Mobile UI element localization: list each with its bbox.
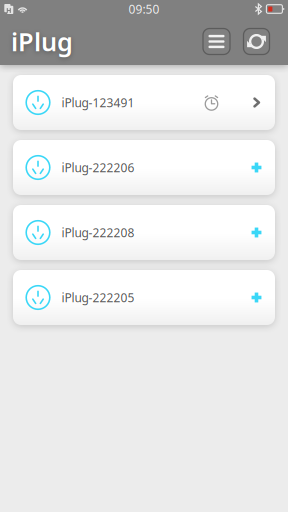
button[interactable]: iPlug-222206 bbox=[13, 140, 275, 195]
button[interactable]: iPlug-222205 bbox=[13, 270, 275, 325]
staticText: iPlug-222206 bbox=[61, 159, 134, 175]
button[interactable]: Refresh bbox=[243, 28, 269, 54]
button[interactable]: iPlug-123491 bbox=[13, 75, 275, 130]
staticText: iPlug bbox=[11, 25, 73, 58]
staticText: iPlug-222208 bbox=[61, 224, 134, 240]
button[interactable]: Menu bbox=[203, 28, 230, 54]
staticText: iPlug-123491 bbox=[61, 94, 134, 110]
staticText: 09:50 bbox=[128, 1, 159, 17]
staticText: iPlug-222205 bbox=[61, 289, 134, 305]
button[interactable]: iPlug-222208 bbox=[13, 205, 275, 260]
